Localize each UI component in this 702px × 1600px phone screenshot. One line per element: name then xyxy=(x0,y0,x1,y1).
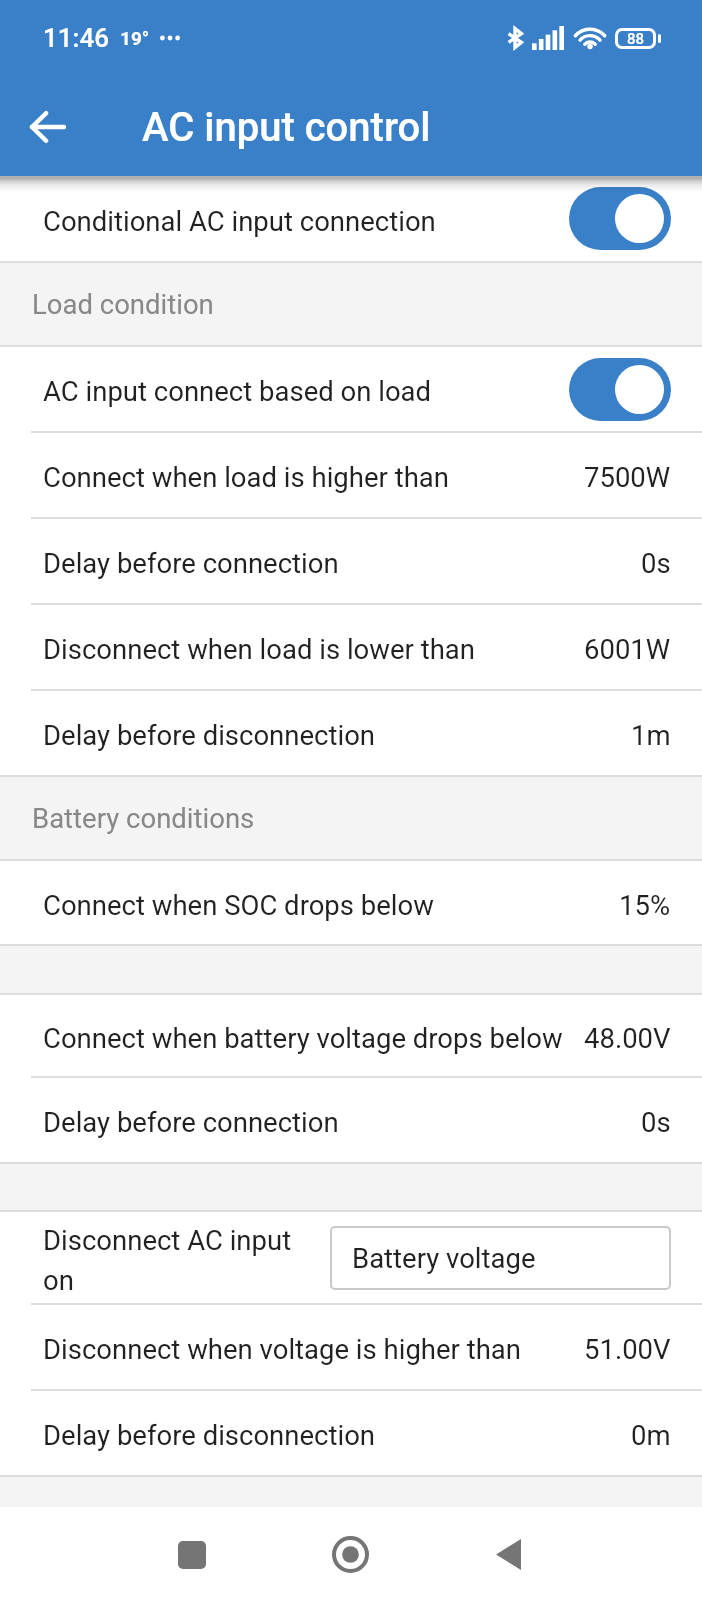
button[interactable]: Back xyxy=(466,1512,551,1597)
staticText: 1m xyxy=(631,719,671,751)
button[interactable]: Delay before connection xyxy=(0,1078,702,1162)
button[interactable]: Connect when SOC drops below xyxy=(0,861,702,944)
staticText: Conditional AC input connection xyxy=(43,205,436,237)
staticText: Disconnect AC input on xyxy=(43,1224,313,1296)
staticText: 6001W xyxy=(584,633,671,665)
staticText: 88 xyxy=(627,30,645,48)
button[interactable]: AC input connect based on load xyxy=(0,347,702,433)
staticText: Connect when SOC drops below xyxy=(43,889,434,921)
staticText: Disconnect when load is lower than xyxy=(43,633,475,665)
staticText: 0m xyxy=(631,1419,671,1451)
staticText: Delay before disconnection xyxy=(43,719,376,751)
staticText: 15% xyxy=(619,889,671,921)
staticText: Load condition xyxy=(32,288,214,320)
button[interactable]: Recent apps xyxy=(149,1512,234,1597)
button[interactable]: Home xyxy=(308,1512,393,1597)
staticText: 7500W xyxy=(584,461,671,493)
staticText: 19° xyxy=(120,27,150,49)
staticText: Connect when battery voltage drops below xyxy=(43,1022,563,1054)
button[interactable]: Delay before connection xyxy=(0,519,702,605)
button[interactable]: Delay before disconnection xyxy=(0,1391,702,1475)
staticText: 48.00V xyxy=(584,1022,671,1054)
button[interactable]: Battery voltage xyxy=(330,1226,671,1290)
staticText: Disconnect when voltage is higher than xyxy=(43,1333,522,1365)
staticText: 51.00V xyxy=(584,1333,671,1365)
staticText: Delay before connection xyxy=(43,1106,339,1138)
button[interactable]: Connect when battery voltage drops below xyxy=(0,995,702,1078)
staticText: Delay before connection xyxy=(43,547,339,579)
staticText: Delay before disconnection xyxy=(43,1419,376,1451)
button[interactable]: Disconnect when voltage is higher than xyxy=(0,1305,702,1391)
button[interactable]: Disconnect when load is lower than xyxy=(0,605,702,691)
staticText: Battery conditions xyxy=(32,802,255,834)
button[interactable]: Connect when load is higher than xyxy=(0,433,702,519)
staticText: AC input control xyxy=(142,104,431,151)
staticText: 0s xyxy=(641,547,671,579)
staticText: 11:46 xyxy=(43,23,109,53)
staticText: Connect when load is higher than xyxy=(43,461,449,493)
staticText: Battery voltage xyxy=(352,1242,536,1274)
staticText: 0s xyxy=(641,1106,671,1138)
staticText: AC input connect based on load xyxy=(43,375,432,407)
button[interactable]: Back xyxy=(16,96,78,158)
button[interactable]: Delay before disconnection xyxy=(0,691,702,775)
button[interactable]: Conditional AC input connection xyxy=(0,176,702,261)
